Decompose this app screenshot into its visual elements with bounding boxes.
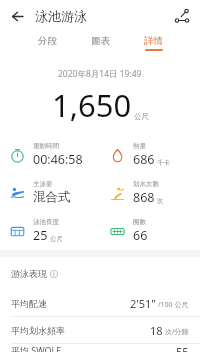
- button[interactable]: Share: [166, 0, 198, 32]
- button[interactable]: 分段: [33, 33, 62, 53]
- staticText: 泳池游泳: [35, 8, 87, 24]
- staticText: 熱量: [133, 142, 146, 150]
- button[interactable]: 圖表: [86, 33, 115, 53]
- staticText: 2'51": [130, 296, 156, 311]
- staticText: 主泳姿: [33, 180, 53, 188]
- staticText: 平均划水頻率: [11, 325, 65, 336]
- staticText: 平均配速: [11, 298, 47, 309]
- button[interactable]: 划水次數: [100, 180, 200, 206]
- staticText: 00:46:58: [33, 151, 83, 168]
- staticText: 868: [133, 189, 155, 206]
- staticText: 18: [150, 323, 163, 338]
- staticText: 次: [157, 197, 164, 205]
- staticText: 1,650: [52, 84, 132, 126]
- button[interactable]: 主泳姿: [0, 180, 100, 205]
- staticText: 分段: [38, 35, 57, 47]
- button[interactable]: 運動時間: [0, 142, 100, 168]
- staticText: /100 公尺: [158, 300, 189, 310]
- button[interactable]: 平均划水頻率: [0, 317, 200, 343]
- staticText: 25: [33, 227, 48, 244]
- button[interactable]: 泳池長度: [0, 218, 100, 244]
- staticText: 游泳表現: [11, 268, 47, 279]
- staticText: 運動時間: [33, 142, 59, 150]
- staticText: 圈數: [133, 218, 146, 226]
- staticText: 686: [133, 151, 155, 168]
- staticText: 66: [133, 227, 148, 244]
- staticText: 公尺: [134, 112, 149, 121]
- staticText: 次/分鐘: [165, 327, 189, 337]
- staticText: 划水次數: [133, 180, 159, 188]
- staticText: 公尺: [50, 235, 63, 243]
- staticText: 55: [176, 344, 189, 352]
- staticText: 平均 SWOLF: [11, 344, 61, 352]
- button[interactable]: 詳情: [139, 33, 168, 53]
- staticText: 泳池長度: [33, 218, 59, 226]
- staticText: 千卡: [157, 159, 170, 167]
- button[interactable]: 平均配速: [0, 290, 200, 316]
- button[interactable]: 熱量: [100, 142, 200, 168]
- button[interactable]: 圈數: [100, 218, 200, 244]
- staticText: 混合式: [33, 189, 71, 205]
- staticText: 圖表: [91, 35, 110, 47]
- button[interactable]: Back: [0, 0, 32, 32]
- staticText: 詳情: [144, 35, 163, 47]
- button[interactable]: 平均 SWOLF: [0, 344, 200, 352]
- staticText: 2020年8月14日 19:49: [58, 68, 142, 80]
